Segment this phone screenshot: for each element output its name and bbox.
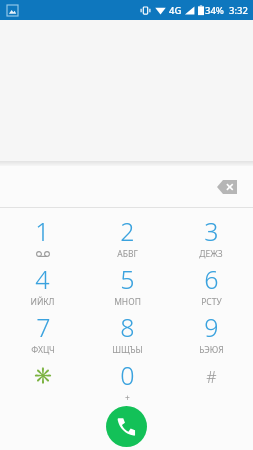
staticText: 8 (120, 310, 135, 344)
staticText: 3:32 (229, 4, 248, 17)
staticText: ✳ (33, 366, 53, 385)
staticText: 4 (35, 262, 50, 296)
button[interactable]: 7 (0, 308, 85, 356)
button[interactable]: 1 (0, 212, 85, 260)
staticText: 5 (120, 262, 135, 296)
staticText: ШЩЪЫ (112, 344, 143, 356)
staticText: ИЙКЛ (30, 296, 55, 308)
staticText: МНОП (114, 296, 141, 308)
button[interactable]: ✳ (0, 356, 85, 404)
button[interactable]: # (169, 356, 253, 404)
staticText: 3 (204, 214, 219, 248)
button[interactable]: Backspace (209, 169, 245, 205)
button[interactable]: 5 (85, 260, 169, 308)
staticText: 4G (169, 4, 182, 17)
button[interactable]: 9 (169, 308, 253, 356)
staticText: ФХЦЧ (31, 344, 55, 356)
staticText: 2 (120, 214, 135, 248)
button[interactable]: 6 (169, 260, 253, 308)
staticText: ЬЭЮЯ (199, 344, 224, 356)
button[interactable]: 0 (85, 356, 169, 404)
button[interactable]: 3 (169, 212, 253, 260)
button[interactable]: 4 (0, 260, 85, 308)
staticText: 6 (204, 262, 219, 296)
button[interactable]: 8 (85, 308, 169, 356)
staticText: + (125, 392, 130, 404)
staticText: 34% (205, 4, 224, 17)
staticText: РСТУ (201, 296, 222, 308)
staticText: ДЕЖЗ (199, 248, 223, 260)
staticText: 9 (204, 310, 219, 344)
staticText: 7 (36, 310, 51, 344)
staticText: # (206, 366, 217, 388)
staticText: 0 (120, 358, 135, 392)
button[interactable]: Call (106, 406, 147, 447)
staticText: АБВГ (117, 248, 138, 260)
staticText: 1 (35, 214, 50, 248)
button[interactable]: 2 (85, 212, 169, 260)
